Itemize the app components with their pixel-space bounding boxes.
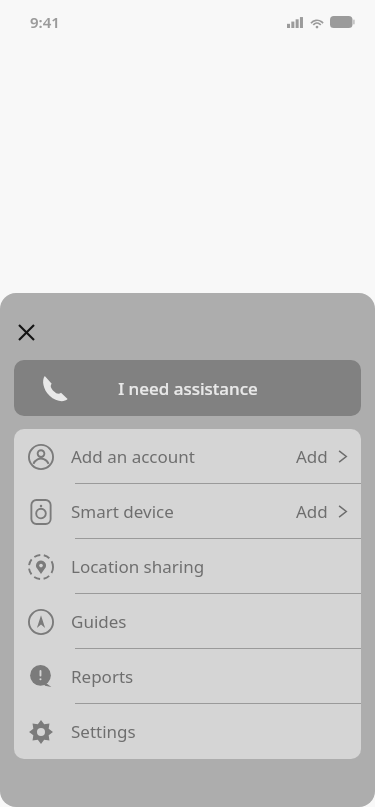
staticText: Reports xyxy=(71,665,134,688)
button[interactable]: Close xyxy=(6,312,46,352)
staticText: Location sharing xyxy=(71,555,205,578)
button[interactable]: Guides xyxy=(14,594,361,649)
staticText: Add xyxy=(296,445,328,468)
button[interactable]: Reports xyxy=(14,649,361,704)
staticText: 9:41 xyxy=(30,12,60,32)
staticText: Add an account xyxy=(71,445,195,468)
button[interactable]: Add an account xyxy=(14,429,361,484)
staticText: Add xyxy=(296,500,328,523)
button[interactable]: Location sharing xyxy=(14,539,361,594)
staticText: I need assistance xyxy=(118,377,258,400)
staticText: Guides xyxy=(71,610,127,633)
staticText: Settings xyxy=(71,720,136,743)
button[interactable]: Smart device xyxy=(14,484,361,539)
staticText: Smart device xyxy=(71,500,174,523)
button[interactable]: Settings xyxy=(14,704,361,759)
button[interactable]: I need assistance xyxy=(14,360,361,416)
